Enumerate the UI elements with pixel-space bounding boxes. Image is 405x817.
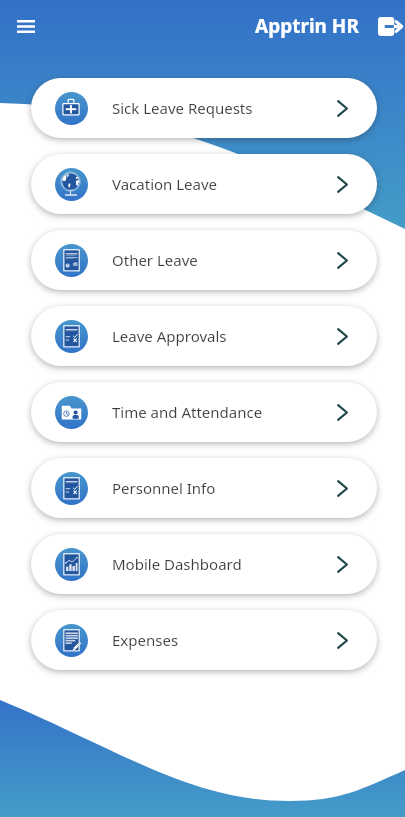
button[interactable]: Expenses	[31, 610, 377, 670]
staticText: Personnel Info	[112, 478, 216, 498]
button[interactable]: Other Leave	[31, 230, 377, 290]
button[interactable]: Time and Attendance	[31, 382, 377, 442]
button[interactable]: Menu	[9, 9, 43, 43]
staticText: Expenses	[112, 630, 179, 650]
staticText: Other Leave	[112, 250, 198, 270]
staticText: Sick Leave Requests	[112, 98, 253, 118]
button[interactable]: Personnel Info	[31, 458, 377, 518]
button[interactable]: Logout	[376, 12, 404, 40]
button[interactable]: Mobile Dashboard	[31, 534, 377, 594]
button[interactable]: Vacation Leave	[31, 154, 377, 214]
staticText: Vacation Leave	[112, 174, 218, 194]
staticText: Leave Approvals	[112, 326, 227, 346]
button[interactable]: Leave Approvals	[31, 306, 377, 366]
button[interactable]: Sick Leave Requests	[31, 78, 377, 138]
staticText: Apptrin HR	[255, 13, 359, 39]
staticText: Time and Attendance	[112, 402, 263, 422]
staticText: Mobile Dashboard	[112, 554, 242, 574]
